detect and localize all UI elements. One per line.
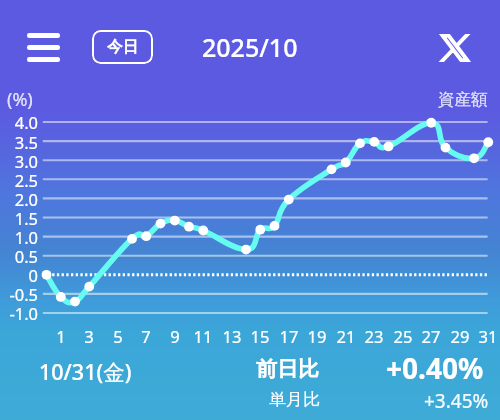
- staticText: 15: [244, 325, 276, 347]
- staticText: +3.45%: [424, 388, 489, 414]
- staticText: 2.5: [0, 169, 38, 191]
- button[interactable]: 10/31(金): [39, 357, 132, 386]
- staticText: 前日比: [256, 356, 319, 382]
- staticText: -0.5: [0, 283, 38, 305]
- staticText: 21: [330, 325, 362, 347]
- staticText: 3.5: [0, 131, 38, 153]
- staticText: 1: [45, 325, 77, 347]
- staticText: 3: [73, 325, 105, 347]
- staticText: 17: [273, 325, 305, 347]
- staticText: 2.0: [0, 188, 38, 210]
- staticText: 1.5: [0, 207, 38, 229]
- button[interactable]: 2025/10: [202, 30, 298, 64]
- staticText: 11: [187, 325, 219, 347]
- staticText: 7: [130, 325, 162, 347]
- staticText: 0.5: [0, 245, 38, 267]
- staticText: 19: [301, 325, 333, 347]
- staticText: 5: [102, 325, 134, 347]
- staticText: 0: [0, 264, 38, 286]
- button[interactable]: Share on X: [430, 25, 480, 71]
- staticText: 23: [358, 325, 390, 347]
- staticText: 資産額: [438, 89, 488, 110]
- staticText: 4.0: [0, 111, 38, 133]
- staticText: 29: [444, 325, 476, 347]
- staticText: +0.40%: [386, 349, 484, 387]
- staticText: 13: [216, 325, 248, 347]
- staticText: 9: [159, 325, 191, 347]
- staticText: 1.0: [0, 226, 38, 248]
- staticText: 単月比: [269, 389, 320, 410]
- button[interactable]: Menu: [18, 22, 68, 72]
- staticText: (%): [7, 87, 33, 112]
- staticText: 25: [387, 325, 419, 347]
- staticText: 今日: [107, 37, 138, 57]
- button[interactable]: 今日: [92, 30, 153, 64]
- staticText: 27: [415, 325, 447, 347]
- staticText: -1.0: [0, 302, 38, 324]
- staticText: 3.0: [0, 150, 38, 172]
- staticText: 31: [472, 325, 500, 347]
